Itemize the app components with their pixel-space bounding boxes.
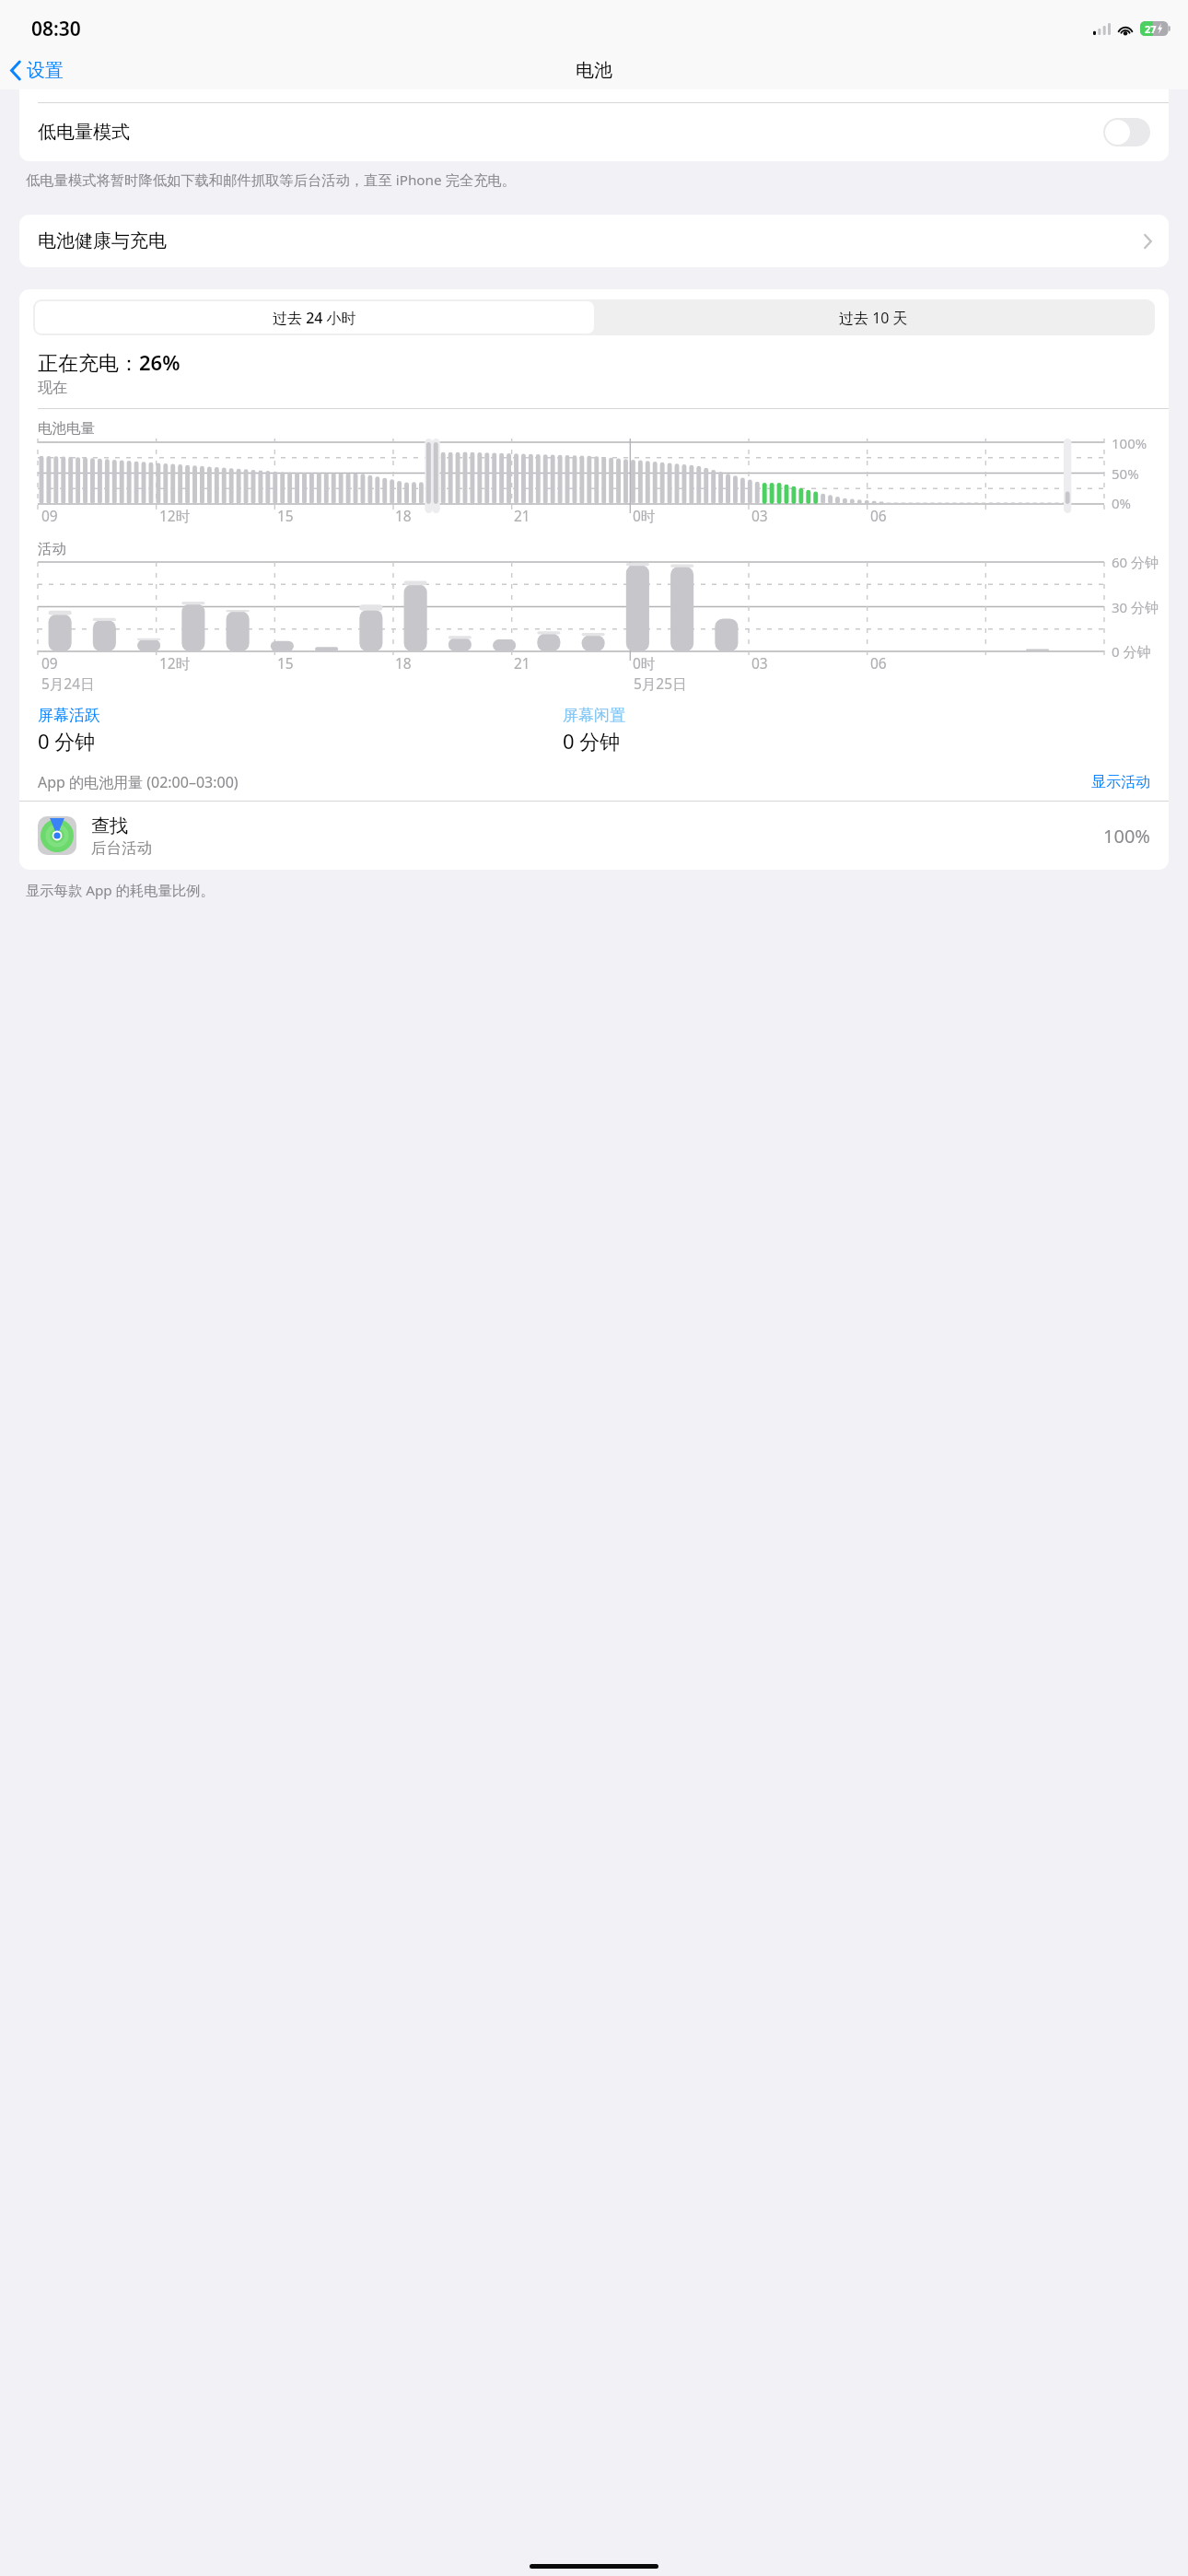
- staticText: 过去 24 小时: [273, 308, 356, 328]
- staticText: 30 分钟: [1112, 598, 1159, 616]
- staticText: 18: [395, 506, 412, 525]
- staticText: 15: [277, 506, 294, 525]
- staticText: 06: [870, 653, 887, 673]
- staticText: 屏幕闲置: [563, 706, 625, 725]
- button[interactable]: 查找: [19, 802, 1169, 870]
- staticText: 27: [1145, 22, 1157, 36]
- button[interactable]: 低电量模式: [19, 103, 1169, 161]
- staticText: 显示每款 App 的耗电量比例。: [26, 881, 215, 900]
- staticText: 设置: [27, 59, 64, 82]
- staticText: 正在充电：26%: [38, 348, 181, 376]
- staticText: 低电量模式: [38, 121, 130, 144]
- staticText: 过去 10 天: [839, 308, 908, 328]
- staticText: 21: [514, 653, 530, 673]
- staticText: 5月25日: [634, 673, 687, 693]
- staticText: 0 分钟: [1112, 642, 1151, 661]
- staticText: 12时: [159, 506, 191, 525]
- staticText: 06: [870, 506, 887, 525]
- staticText: 0 分钟: [563, 727, 621, 755]
- button[interactable]: 设置: [6, 54, 68, 87]
- staticText: 21: [514, 506, 530, 525]
- staticText: 18: [395, 653, 412, 673]
- staticText: 100%: [1103, 824, 1150, 849]
- staticText: 09: [41, 506, 58, 525]
- staticText: 活动: [38, 540, 66, 558]
- staticText: 03: [751, 506, 768, 525]
- staticText: 后台活动: [91, 838, 152, 858]
- staticText: 现在: [38, 379, 67, 397]
- staticText: 60 分钟: [1112, 553, 1159, 571]
- staticText: 0时: [633, 653, 656, 673]
- staticText: App 的电池用量 (02:00–03:00): [38, 772, 239, 792]
- staticText: 查找: [91, 814, 128, 837]
- staticText: 电池: [576, 59, 612, 82]
- staticText: 03: [751, 653, 768, 673]
- staticText: 0%: [1112, 494, 1132, 512]
- button[interactable]: 关: [1103, 118, 1150, 146]
- button[interactable]: 电池健康与充电: [19, 215, 1169, 267]
- staticText: 12时: [159, 653, 191, 673]
- staticText: 100%: [1112, 434, 1147, 452]
- button[interactable]: 显示活动: [1091, 773, 1150, 791]
- staticText: 5月24日: [41, 673, 95, 693]
- staticText: 09: [41, 653, 58, 673]
- staticText: 0时: [633, 506, 656, 525]
- button[interactable]: 过去 24 小时: [35, 301, 594, 334]
- staticText: 电池电量: [38, 419, 95, 438]
- staticText: 屏幕活跃: [38, 706, 100, 725]
- staticText: 08:30: [31, 16, 81, 42]
- staticText: 显示活动: [1091, 773, 1150, 791]
- staticText: 50%: [1112, 464, 1139, 483]
- staticText: 0 分钟: [38, 727, 96, 755]
- staticText: 电池健康与充电: [38, 229, 167, 252]
- staticText: 15: [277, 653, 294, 673]
- staticText: 低电量模式将暂时降低如下载和邮件抓取等后台活动，直至 iPhone 完全充电。: [26, 170, 517, 190]
- button[interactable]: 过去 10 天: [594, 301, 1153, 334]
